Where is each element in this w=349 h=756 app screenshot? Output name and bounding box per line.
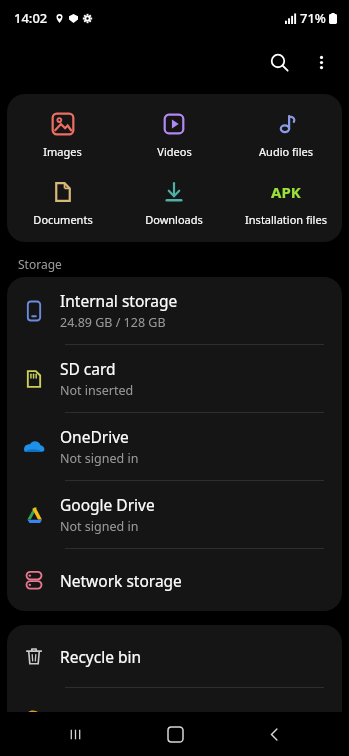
button[interactable]: Recycle bin bbox=[7, 625, 342, 688]
button[interactable]: Audio files bbox=[230, 104, 342, 164]
staticText: Internal storage bbox=[60, 290, 178, 311]
staticText: Google Drive bbox=[60, 494, 155, 515]
staticText: 14:02 bbox=[14, 9, 48, 27]
button[interactable]: Home bbox=[151, 712, 199, 756]
staticText: Videos bbox=[157, 144, 192, 159]
button[interactable]: Search bbox=[257, 40, 301, 84]
staticText: OneDrive bbox=[60, 426, 129, 447]
staticText: Analyse storage bbox=[60, 709, 176, 730]
button[interactable]: SD card bbox=[7, 345, 342, 413]
button[interactable]: Images bbox=[7, 104, 118, 164]
staticText: Documents bbox=[33, 212, 93, 227]
button[interactable]: Recents bbox=[51, 712, 99, 756]
button[interactable]: OneDrive bbox=[7, 413, 342, 481]
staticText: Images bbox=[43, 144, 82, 159]
staticText: Network storage bbox=[60, 570, 182, 591]
staticText: 24.89 GB / 128 GB bbox=[60, 314, 166, 331]
staticText: Downloads bbox=[145, 212, 203, 227]
staticText: SD card bbox=[60, 358, 116, 379]
staticText: Not inserted bbox=[60, 382, 134, 399]
button[interactable]: Analyse storage bbox=[7, 688, 342, 750]
staticText: Recycle bin bbox=[60, 646, 142, 667]
button[interactable]: Network storage bbox=[7, 549, 342, 611]
button[interactable]: Documents bbox=[7, 172, 118, 232]
button[interactable]: Back bbox=[250, 712, 298, 756]
button[interactable]: APK bbox=[230, 172, 342, 232]
staticText: APK bbox=[271, 182, 301, 202]
button[interactable]: Google Drive bbox=[7, 481, 342, 549]
staticText: Not signed in bbox=[60, 518, 139, 535]
staticText: Audio files bbox=[259, 144, 313, 159]
staticText: Not signed in bbox=[60, 450, 139, 467]
staticText: 71% bbox=[300, 9, 326, 27]
staticText: Installation files bbox=[245, 212, 327, 227]
staticText: Storage bbox=[18, 256, 62, 272]
button[interactable]: Internal storage bbox=[7, 277, 342, 345]
button[interactable]: Downloads bbox=[118, 172, 230, 232]
button[interactable]: Videos bbox=[118, 104, 230, 164]
button[interactable]: More options bbox=[301, 42, 341, 82]
